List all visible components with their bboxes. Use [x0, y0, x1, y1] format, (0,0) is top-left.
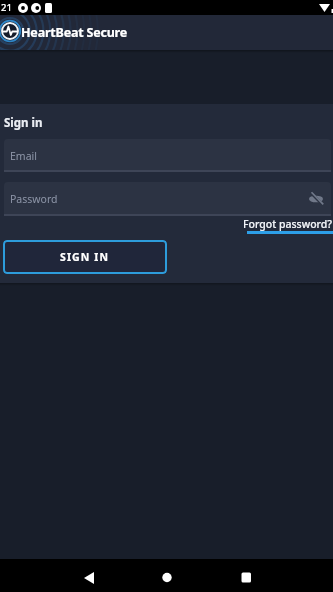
staticText: SIGN IN	[60, 250, 110, 264]
staticText: Password	[10, 192, 58, 206]
button[interactable]	[222, 559, 333, 592]
staticText: HeartBeat Secure	[21, 24, 127, 41]
staticText: Forgot password?	[243, 217, 333, 231]
staticText: Sign in	[4, 115, 43, 131]
button[interactable]	[0, 559, 111, 592]
button[interactable]: SIGN IN	[3, 240, 167, 274]
button[interactable]: Email	[4, 139, 331, 172]
button[interactable]: Password	[4, 182, 331, 216]
button[interactable]: Forgot password?	[0, 217, 333, 234]
button[interactable]	[111, 559, 222, 592]
staticText: Email	[10, 149, 37, 163]
staticText: 21	[1, 1, 12, 14]
